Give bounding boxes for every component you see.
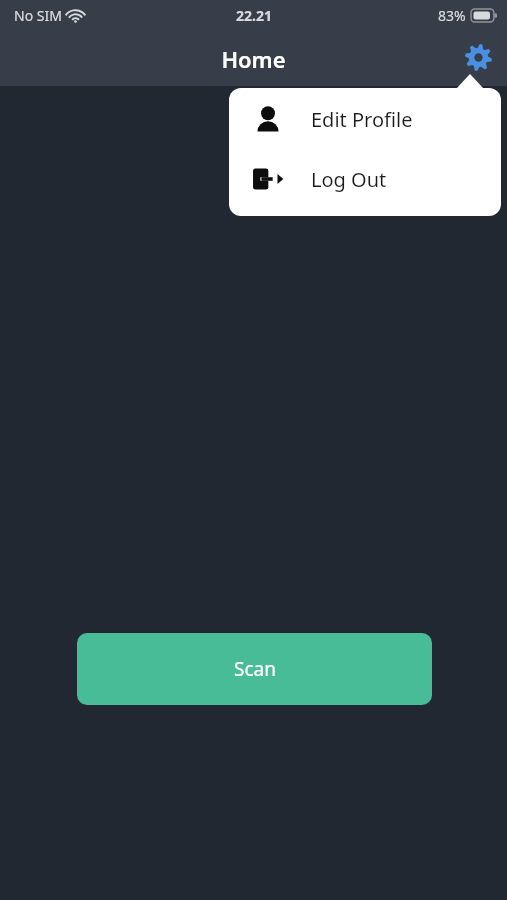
button[interactable]: Log Out: [229, 154, 501, 204]
staticText: 22.21: [236, 6, 272, 25]
button[interactable]: Edit Profile: [229, 94, 501, 144]
button[interactable]: Settings: [457, 36, 499, 78]
button[interactable]: Scan: [77, 633, 432, 705]
staticText: Log Out: [311, 166, 387, 193]
staticText: No SIM: [14, 6, 62, 25]
staticText: Home: [221, 44, 286, 74]
staticText: 83%: [438, 6, 466, 25]
staticText: Edit Profile: [311, 106, 413, 133]
staticText: Scan: [234, 656, 276, 682]
